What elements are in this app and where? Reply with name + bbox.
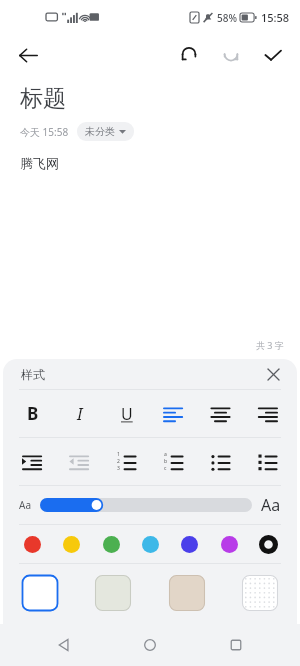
button[interactable]: Align left bbox=[150, 390, 197, 437]
button[interactable]: Paper style bbox=[166, 572, 208, 614]
button[interactable]: Align center bbox=[197, 390, 244, 437]
button[interactable]: Color 1 bbox=[56, 529, 86, 559]
button[interactable]: Square list bbox=[244, 438, 291, 485]
staticText: 共 3 字 bbox=[256, 339, 284, 351]
button[interactable]: Recents bbox=[218, 627, 254, 663]
button[interactable]: Color 2 bbox=[96, 529, 126, 559]
staticText: 1 bbox=[117, 451, 120, 458]
staticText: c bbox=[164, 465, 167, 472]
button[interactable]: Numbered list bbox=[103, 438, 150, 485]
button[interactable]: Italic bbox=[56, 390, 103, 437]
button[interactable]: Paper style bbox=[92, 572, 134, 614]
staticText: a bbox=[164, 451, 167, 458]
button[interactable]: Undo bbox=[170, 36, 208, 74]
staticText: 2 bbox=[117, 458, 120, 465]
button[interactable]: Redo bbox=[212, 36, 250, 74]
staticText: U bbox=[121, 403, 133, 425]
staticText: 样式 bbox=[21, 367, 45, 382]
button[interactable]: Color 5 bbox=[214, 529, 244, 559]
staticText: 3 bbox=[117, 465, 120, 472]
button[interactable]: Underline bbox=[103, 390, 150, 437]
staticText: b bbox=[164, 458, 168, 465]
button[interactable]: Paper style bbox=[239, 572, 281, 614]
staticText: 58% bbox=[217, 11, 237, 25]
staticText: 未分类 bbox=[85, 125, 115, 138]
button[interactable]: Decrease indent bbox=[56, 438, 103, 485]
button[interactable]: Home bbox=[132, 627, 168, 663]
staticText: B bbox=[27, 402, 39, 425]
button[interactable]: Bulleted list bbox=[197, 438, 244, 485]
staticText: Aa bbox=[19, 498, 31, 512]
staticText: I bbox=[77, 402, 83, 425]
button[interactable]: Save bbox=[254, 36, 292, 74]
button[interactable]: Paper style bbox=[19, 572, 61, 614]
button[interactable]: Color 4 bbox=[174, 529, 204, 559]
button[interactable] bbox=[40, 495, 252, 515]
button[interactable]: Color 0 bbox=[17, 529, 47, 559]
button[interactable]: Close bbox=[259, 360, 287, 388]
staticText: 标题 bbox=[20, 84, 66, 113]
button[interactable]: Bold bbox=[9, 390, 56, 437]
button[interactable]: Color 3 bbox=[135, 529, 165, 559]
button[interactable]: Lettered list bbox=[150, 438, 197, 485]
button[interactable]: Back bbox=[8, 35, 48, 75]
button[interactable]: Black, selected bbox=[253, 529, 283, 559]
button[interactable]: Back bbox=[46, 627, 82, 663]
staticText: Aa bbox=[261, 494, 281, 516]
staticText: 腾飞网 bbox=[20, 155, 59, 171]
button[interactable]: Increase indent bbox=[9, 438, 56, 485]
staticText: 15:58 bbox=[261, 10, 290, 25]
staticText: 今天 15:58 bbox=[20, 125, 69, 139]
button[interactable]: 未分类 bbox=[77, 122, 134, 141]
button[interactable]: Align right bbox=[244, 390, 291, 437]
